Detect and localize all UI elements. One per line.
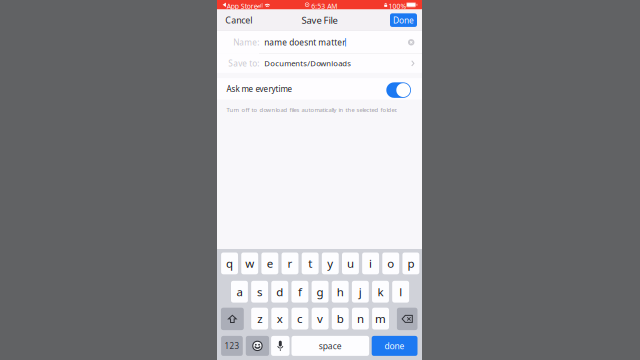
button[interactable]: y [322, 252, 339, 274]
button[interactable]: z [251, 308, 268, 329]
button[interactable]: Save to: [217, 54, 422, 73]
staticText: d [276, 284, 283, 299]
staticText: n [357, 311, 364, 326]
staticText: 123 [224, 340, 239, 351]
button[interactable]: v [312, 308, 328, 329]
button[interactable]: l [392, 281, 409, 303]
staticText: s [257, 284, 262, 299]
button[interactable]: f [291, 281, 308, 303]
button[interactable]: Dictation [271, 336, 289, 356]
button[interactable]: i [362, 252, 379, 274]
staticText: i [369, 256, 372, 271]
staticText: u [347, 256, 354, 271]
button[interactable]: e [261, 252, 278, 274]
staticText: Documents/Downloads [264, 58, 351, 68]
staticText: b [337, 311, 344, 326]
button[interactable]: j [352, 281, 369, 303]
staticText: 6:53 AM [311, 1, 337, 11]
button[interactable]: Cancel [217, 9, 258, 31]
button[interactable]: done [372, 336, 417, 356]
staticText: x [277, 311, 283, 326]
staticText: Cancel [225, 14, 252, 26]
staticText: 100% [389, 1, 407, 11]
staticText: t [308, 256, 312, 271]
button[interactable]: o [382, 252, 399, 274]
staticText: Done [393, 14, 414, 26]
button[interactable]: r [282, 252, 298, 274]
staticText: r [287, 256, 292, 271]
button[interactable]: u [342, 252, 359, 274]
button[interactable]: k [372, 281, 389, 303]
staticText: Ask me everytime [226, 83, 292, 94]
staticText: space [319, 340, 342, 352]
staticText: e [267, 256, 273, 271]
staticText: q [226, 256, 233, 271]
button[interactable]: m [372, 308, 389, 329]
staticText: name doesnt matter [264, 37, 345, 48]
button[interactable]: Emoji [246, 336, 269, 356]
staticText: a [236, 284, 242, 299]
button[interactable]: g [312, 281, 328, 303]
staticText: k [377, 284, 383, 299]
staticText: m [375, 311, 386, 326]
button[interactable]: t [302, 252, 319, 274]
staticText: l [399, 284, 402, 299]
staticText: o [387, 256, 394, 271]
staticText: p [407, 256, 414, 271]
button[interactable]: x [271, 308, 288, 329]
button[interactable]: h [332, 281, 349, 303]
button[interactable]: n [352, 308, 369, 329]
staticText: z [257, 311, 262, 326]
staticText: Save File [301, 14, 337, 27]
staticText: y [327, 256, 333, 271]
staticText: App Store [227, 1, 258, 11]
button[interactable]: d [271, 281, 288, 303]
button[interactable]: p [402, 252, 419, 274]
button[interactable]: Delete [397, 308, 417, 330]
staticText: h [337, 284, 344, 299]
staticText: c [297, 311, 303, 326]
button[interactable]: c [291, 308, 308, 329]
button[interactable]: 123 [221, 336, 243, 356]
staticText: g [317, 284, 324, 299]
staticText: f [298, 284, 302, 299]
button[interactable]: s [251, 281, 268, 303]
button[interactable]: a [231, 281, 248, 303]
button[interactable]: Ask me everytime [217, 78, 422, 99]
button[interactable]: Done [390, 9, 422, 31]
staticText: Name: [233, 37, 259, 48]
staticText: j [359, 284, 362, 299]
button[interactable]: space [291, 336, 369, 356]
staticText: v [317, 311, 323, 326]
staticText: done [385, 340, 405, 352]
staticText: Turn off to download files automatically… [226, 106, 397, 114]
button[interactable]: Name: [217, 31, 422, 54]
button[interactable]: Shift [221, 308, 244, 330]
button[interactable]: q [221, 252, 238, 274]
button[interactable]: w [241, 252, 258, 274]
staticText: w [245, 256, 254, 271]
staticText: Save to: [228, 58, 259, 69]
button[interactable]: b [332, 308, 349, 329]
